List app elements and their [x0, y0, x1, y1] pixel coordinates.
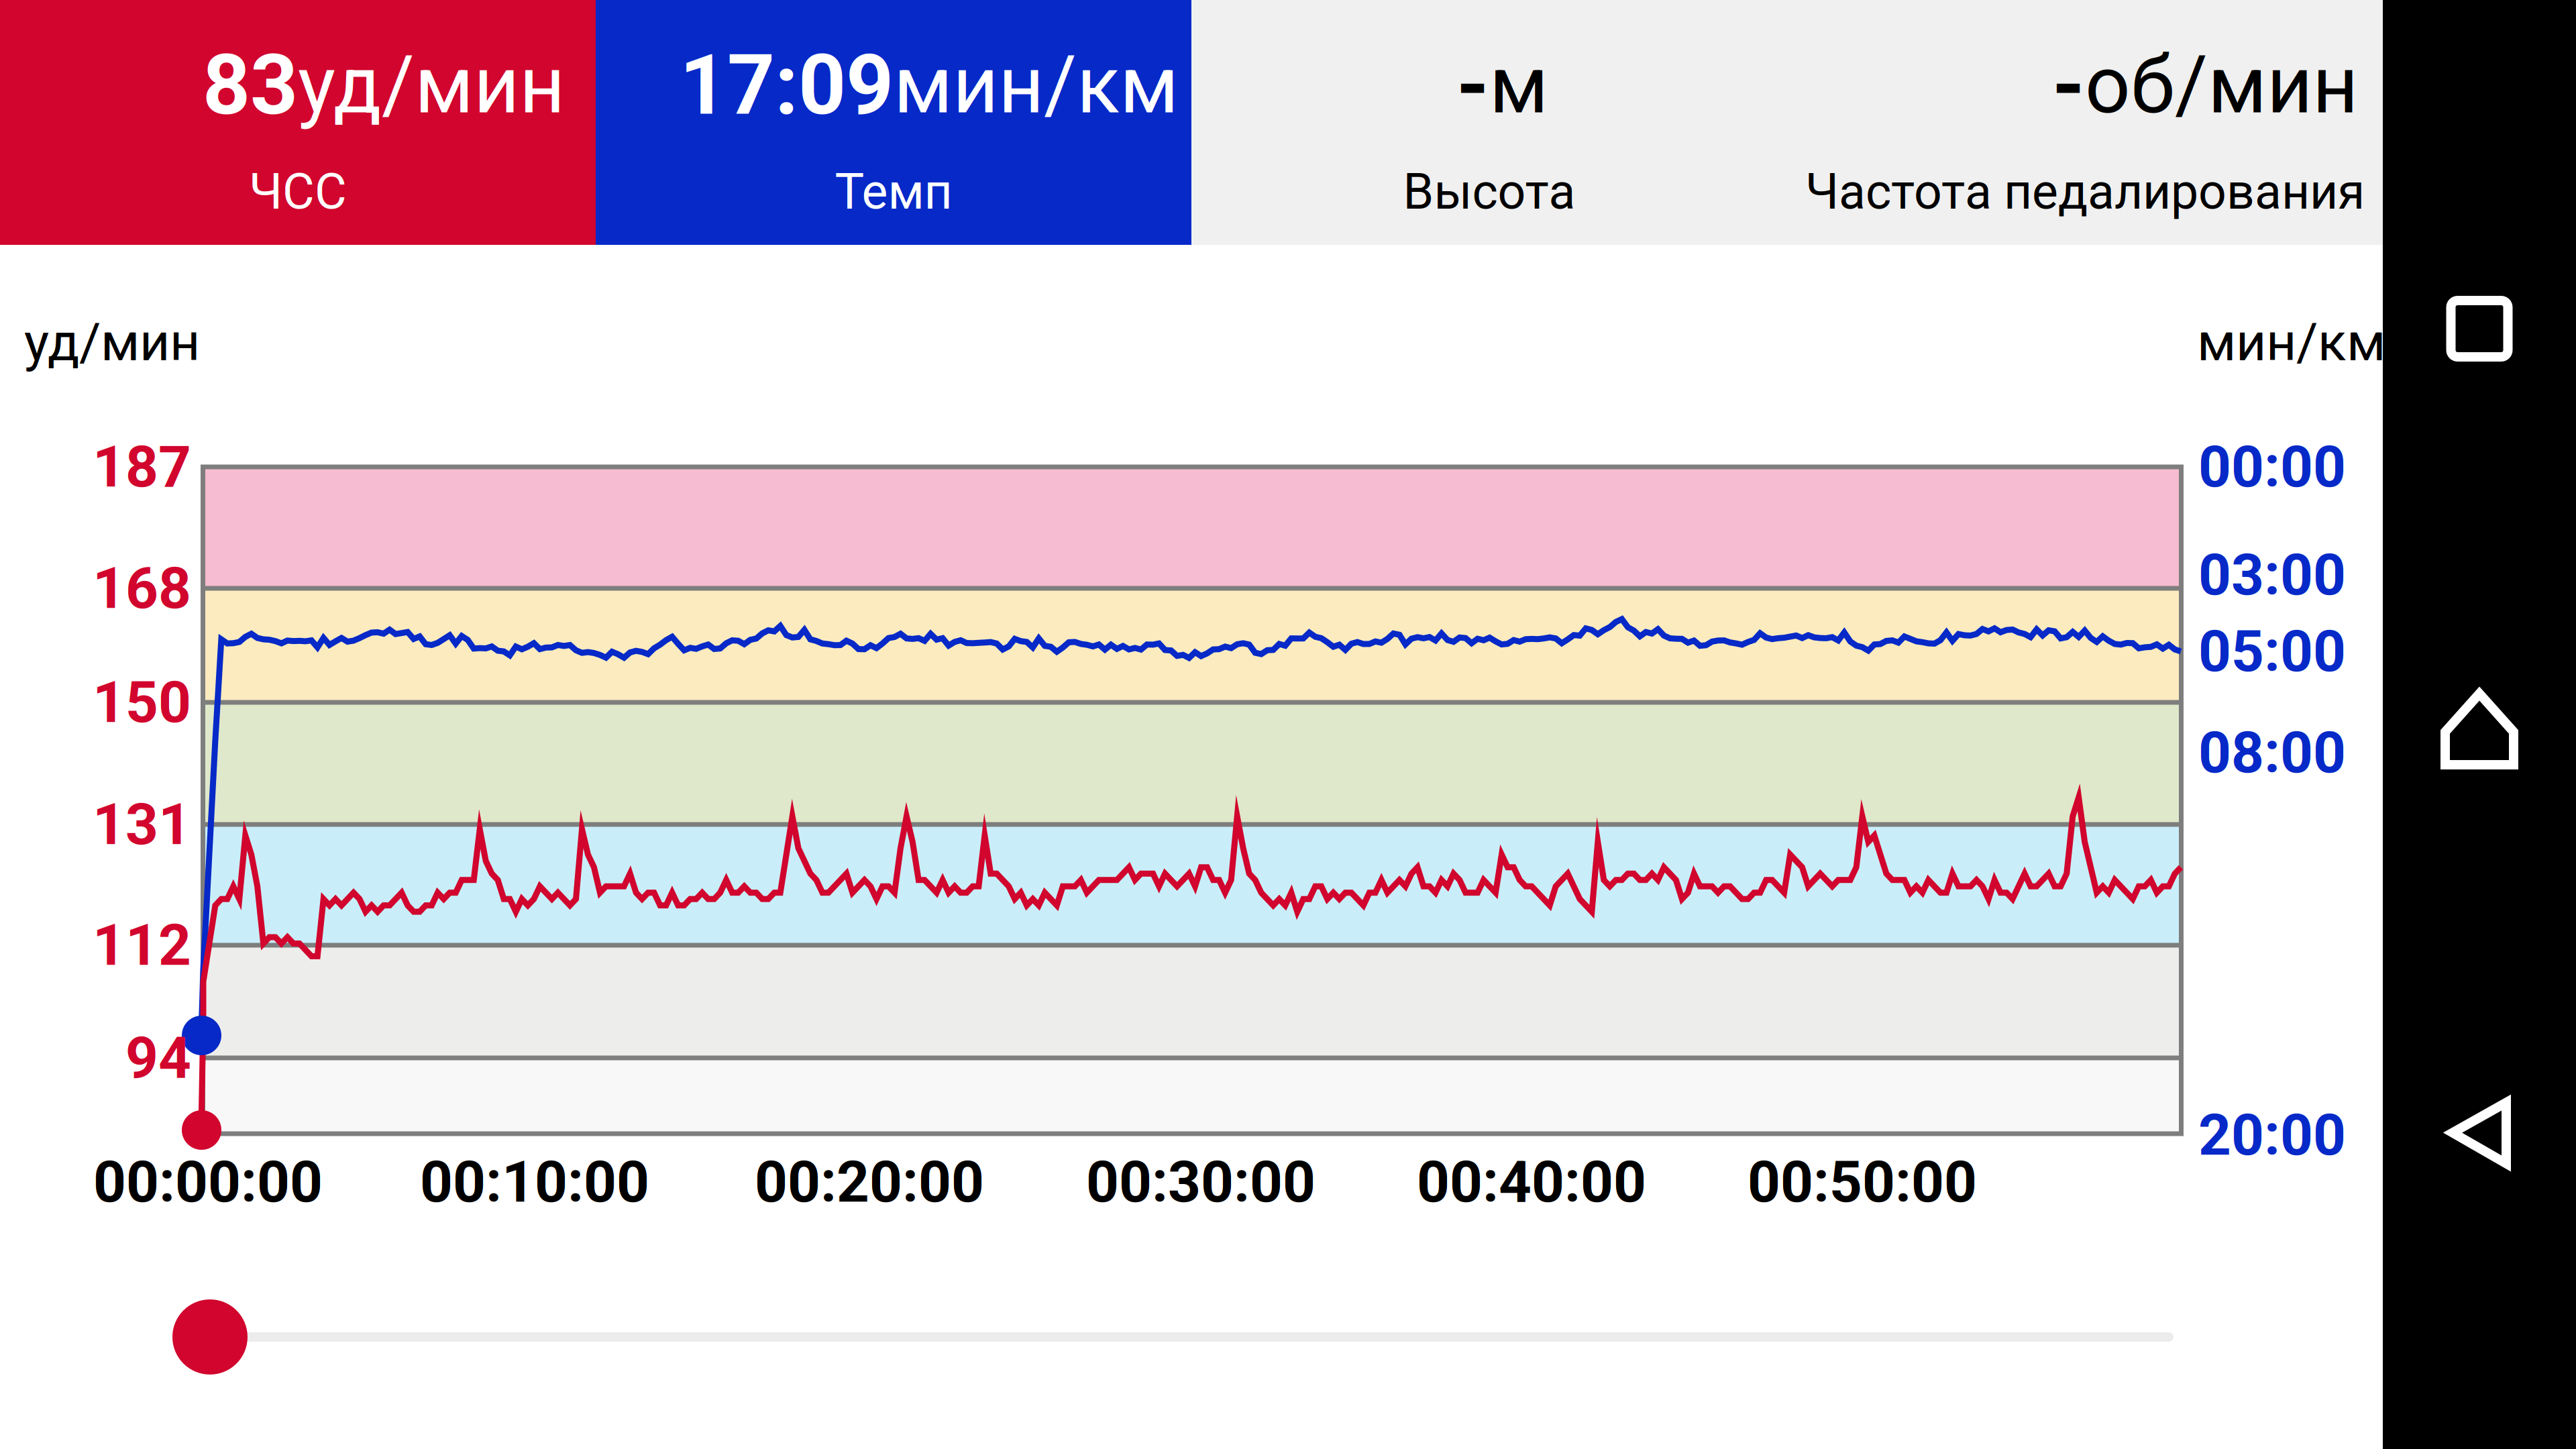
staticText: ЧСС: [249, 163, 347, 221]
staticText: 00:20:00: [755, 1148, 984, 1216]
staticText: об/мин: [2085, 39, 2358, 132]
staticText: уд/мин: [24, 311, 200, 373]
staticText: 00:00:00: [93, 1148, 323, 1216]
staticText: 150: [93, 669, 191, 736]
staticText: 187: [93, 433, 191, 500]
staticText: Частота педалирования: [1805, 163, 2365, 221]
staticText: 00:30:00: [1086, 1148, 1316, 1216]
button[interactable]: Home: [2383, 649, 2576, 810]
staticText: -: [1456, 36, 1489, 134]
staticText: м: [1489, 39, 1548, 132]
staticText: -: [2052, 36, 2085, 134]
staticText: 08:00: [2198, 719, 2346, 786]
staticText: уд/мин: [298, 39, 565, 132]
staticText: Высота: [1403, 163, 1575, 221]
staticText: 20:00: [2198, 1102, 2346, 1169]
button[interactable]: Частота педалирования: [1787, 0, 2383, 245]
staticText: 03:00: [2198, 541, 2346, 608]
staticText: мин/км: [2197, 311, 2385, 373]
staticText: Темп: [835, 163, 952, 221]
staticText: 94: [125, 1024, 191, 1091]
button[interactable]: Scrub position: [172, 1299, 248, 1375]
staticText: 00:50:00: [1748, 1148, 1977, 1216]
staticText: 112: [93, 912, 191, 979]
staticText: 17:09: [680, 36, 894, 134]
staticText: 83: [203, 36, 298, 134]
button[interactable]: Recent apps: [2383, 248, 2576, 409]
staticText: 168: [93, 555, 191, 622]
button[interactable]: Back: [2383, 1053, 2576, 1214]
staticText: 131: [93, 791, 191, 858]
button[interactable]: Высота: [1191, 0, 1787, 245]
button[interactable]: Пульс: [0, 0, 596, 245]
staticText: 00:40:00: [1417, 1148, 1646, 1216]
staticText: 00:10:00: [420, 1148, 649, 1216]
staticText: мин/км: [894, 39, 1179, 132]
staticText: 00:00: [2198, 433, 2346, 500]
button[interactable]: Темп: [596, 0, 1191, 245]
staticText: 05:00: [2198, 618, 2346, 685]
